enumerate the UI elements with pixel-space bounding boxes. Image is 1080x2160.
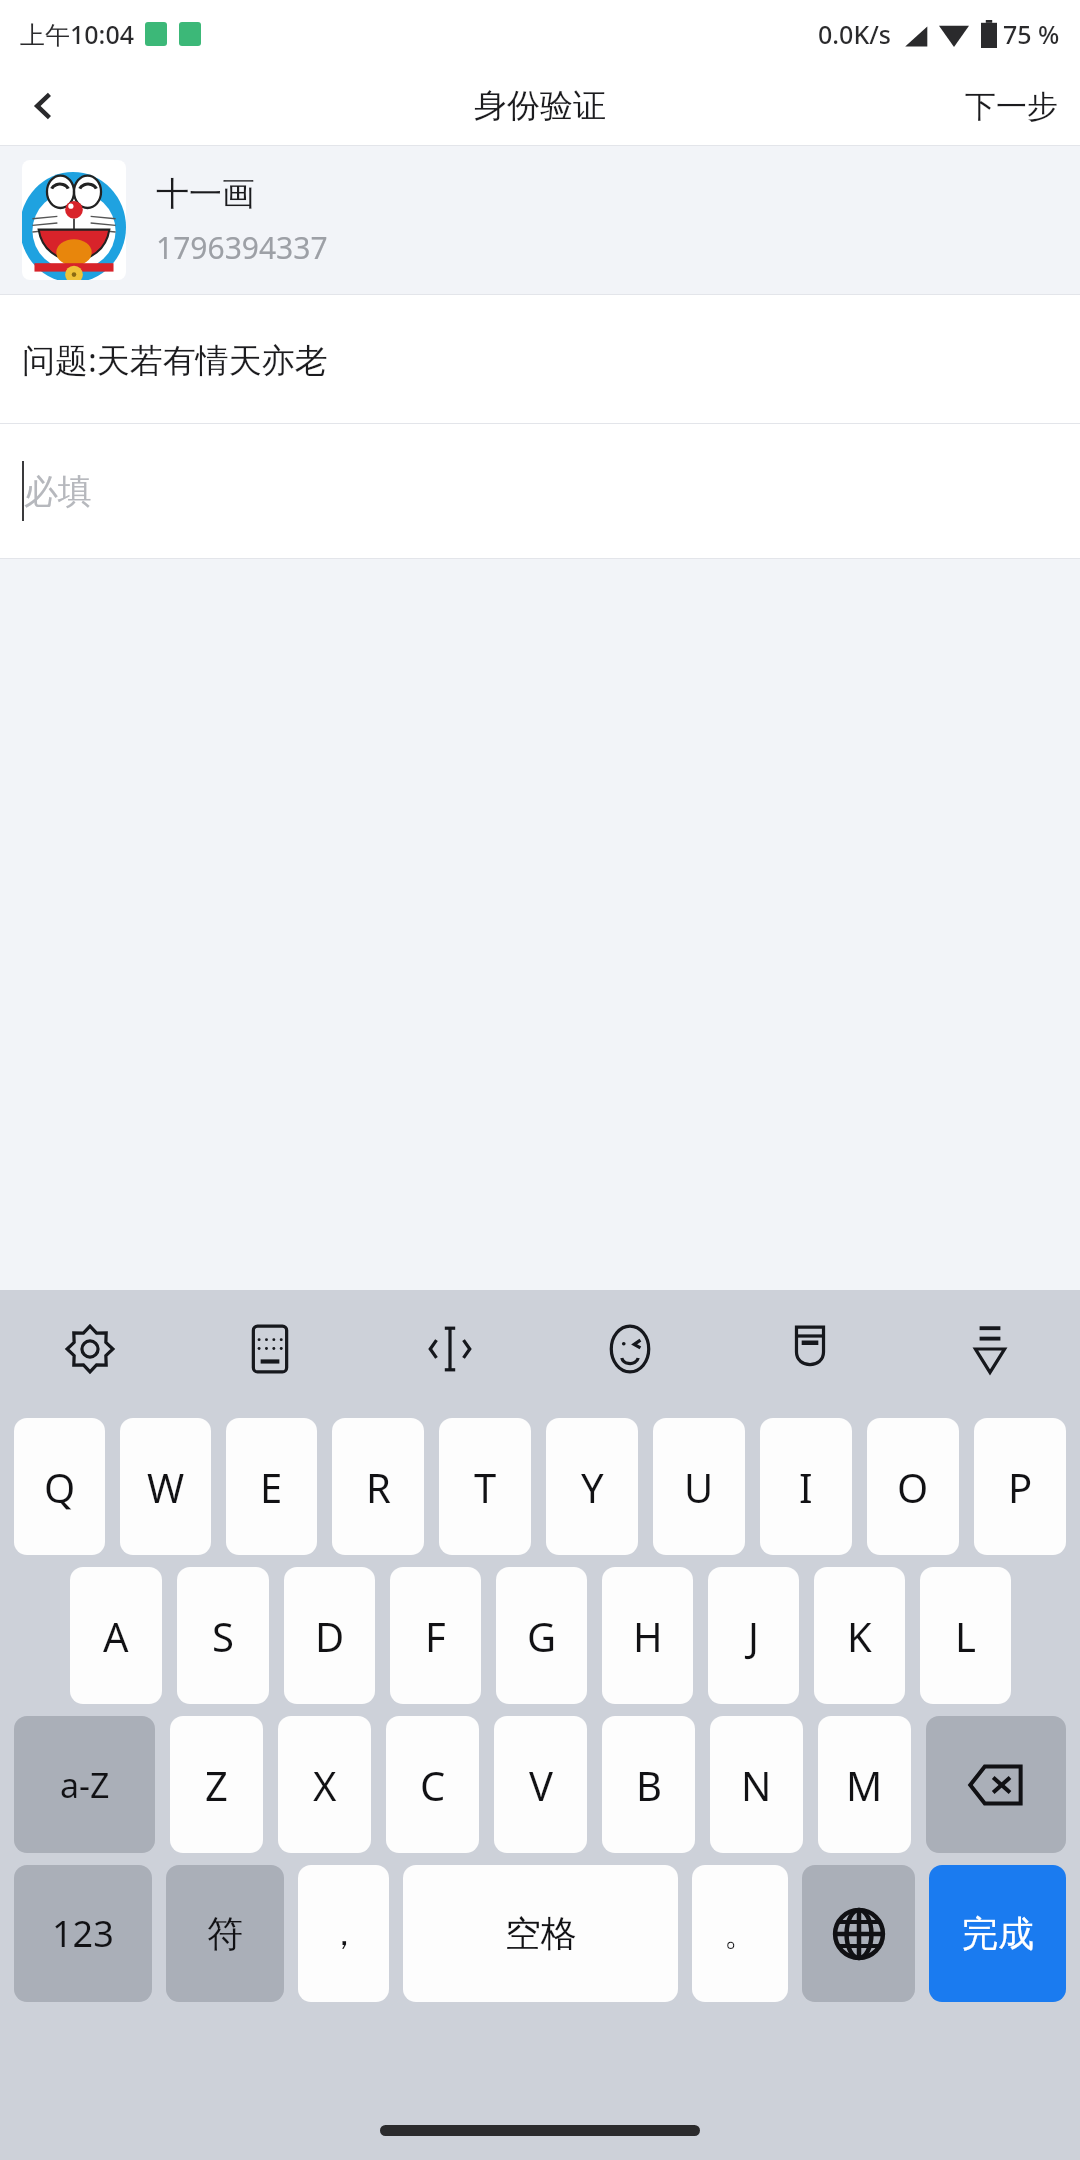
- button[interactable]: 十一画: [0, 146, 1080, 294]
- button[interactable]: D: [284, 1567, 375, 1704]
- button[interactable]: 。: [692, 1865, 788, 2002]
- staticText: 符: [207, 1911, 243, 1956]
- staticText: 完成: [962, 1911, 1034, 1956]
- staticText: 。: [724, 1914, 756, 1954]
- button[interactable]: S: [177, 1567, 269, 1704]
- button[interactable]: a-Z: [14, 1716, 155, 1853]
- staticText: B: [636, 1758, 662, 1812]
- button[interactable]: I: [760, 1418, 852, 1555]
- staticText: E: [260, 1460, 283, 1514]
- staticText: F: [425, 1609, 446, 1663]
- button[interactable]: 空格: [403, 1865, 678, 2002]
- staticText: R: [366, 1460, 391, 1514]
- button[interactable]: N: [710, 1716, 803, 1853]
- button[interactable]: P: [974, 1418, 1066, 1555]
- button[interactable]: 下一步: [943, 75, 1080, 138]
- button[interactable]: Y: [546, 1418, 638, 1555]
- button[interactable]: Emoji: [540, 1290, 720, 1408]
- staticText: D: [315, 1609, 345, 1663]
- staticText: C: [420, 1758, 446, 1812]
- staticText: 0.0K/s: [818, 17, 891, 51]
- staticText: L: [955, 1609, 976, 1663]
- button[interactable]: G: [496, 1567, 587, 1704]
- staticText: ，: [327, 1912, 361, 1955]
- button[interactable]: L: [920, 1567, 1011, 1704]
- button[interactable]: 符: [166, 1865, 284, 2002]
- button[interactable]: Z: [170, 1716, 263, 1853]
- staticText: G: [527, 1609, 557, 1663]
- staticText: 身份验证: [474, 85, 606, 127]
- staticText: S: [212, 1609, 234, 1663]
- button[interactable]: C: [386, 1716, 479, 1853]
- button[interactable]: A: [70, 1567, 162, 1704]
- staticText: 75 %: [1003, 17, 1060, 51]
- staticText: V: [529, 1758, 553, 1812]
- staticText: Y: [581, 1460, 604, 1514]
- staticText: 问题:天若有情天亦老: [22, 337, 328, 382]
- staticText: 123: [52, 1909, 114, 1958]
- staticText: N: [741, 1758, 772, 1812]
- button[interactable]: T: [439, 1418, 531, 1555]
- button[interactable]: Settings: [0, 1290, 180, 1408]
- button[interactable]: B: [602, 1716, 695, 1853]
- button[interactable]: W: [120, 1418, 211, 1555]
- staticText: Q: [44, 1460, 76, 1514]
- staticText: T: [474, 1460, 497, 1514]
- staticText: Z: [205, 1758, 228, 1812]
- staticText: I: [799, 1460, 813, 1514]
- button[interactable]: V: [494, 1716, 587, 1853]
- staticText: U: [684, 1460, 714, 1514]
- button[interactable]: Clipboard: [720, 1290, 900, 1408]
- staticText: 1796394337: [156, 227, 328, 268]
- button[interactable]: J: [708, 1567, 799, 1704]
- staticText: 十一画: [156, 173, 255, 215]
- button[interactable]: X: [278, 1716, 371, 1853]
- staticText: M: [846, 1758, 883, 1812]
- button[interactable]: U: [653, 1418, 745, 1555]
- button[interactable]: M: [818, 1716, 911, 1853]
- button[interactable]: Q: [14, 1418, 105, 1555]
- button[interactable]: ，: [298, 1865, 389, 2002]
- staticText: W: [147, 1460, 185, 1514]
- staticText: H: [633, 1609, 663, 1663]
- button[interactable]: H: [602, 1567, 693, 1704]
- button[interactable]: R: [332, 1418, 424, 1555]
- button[interactable]: F: [390, 1567, 481, 1704]
- staticText: 空格: [505, 1911, 577, 1956]
- staticText: K: [847, 1609, 872, 1663]
- button[interactable]: K: [814, 1567, 905, 1704]
- staticText: 必填: [24, 470, 92, 513]
- button[interactable]: Hide keyboard: [900, 1290, 1080, 1408]
- button[interactable]: Switch language: [802, 1865, 915, 2002]
- button[interactable]: 必填: [0, 424, 1080, 558]
- button[interactable]: 完成: [929, 1865, 1066, 2002]
- button[interactable]: Keyboard layout: [180, 1290, 360, 1408]
- button[interactable]: Cursor move: [360, 1290, 540, 1408]
- staticText: O: [897, 1460, 929, 1514]
- staticText: J: [748, 1609, 759, 1663]
- button[interactable]: E: [226, 1418, 317, 1555]
- staticText: 下一步: [965, 87, 1058, 126]
- staticText: 上午10:04: [20, 17, 135, 51]
- button[interactable]: 123: [14, 1865, 152, 2002]
- staticText: a-Z: [60, 1762, 110, 1808]
- staticText: P: [1008, 1460, 1033, 1514]
- staticText: X: [313, 1758, 337, 1812]
- button[interactable]: Back: [8, 70, 80, 142]
- staticText: A: [103, 1609, 129, 1663]
- button[interactable]: Backspace: [926, 1716, 1066, 1853]
- button[interactable]: O: [867, 1418, 959, 1555]
